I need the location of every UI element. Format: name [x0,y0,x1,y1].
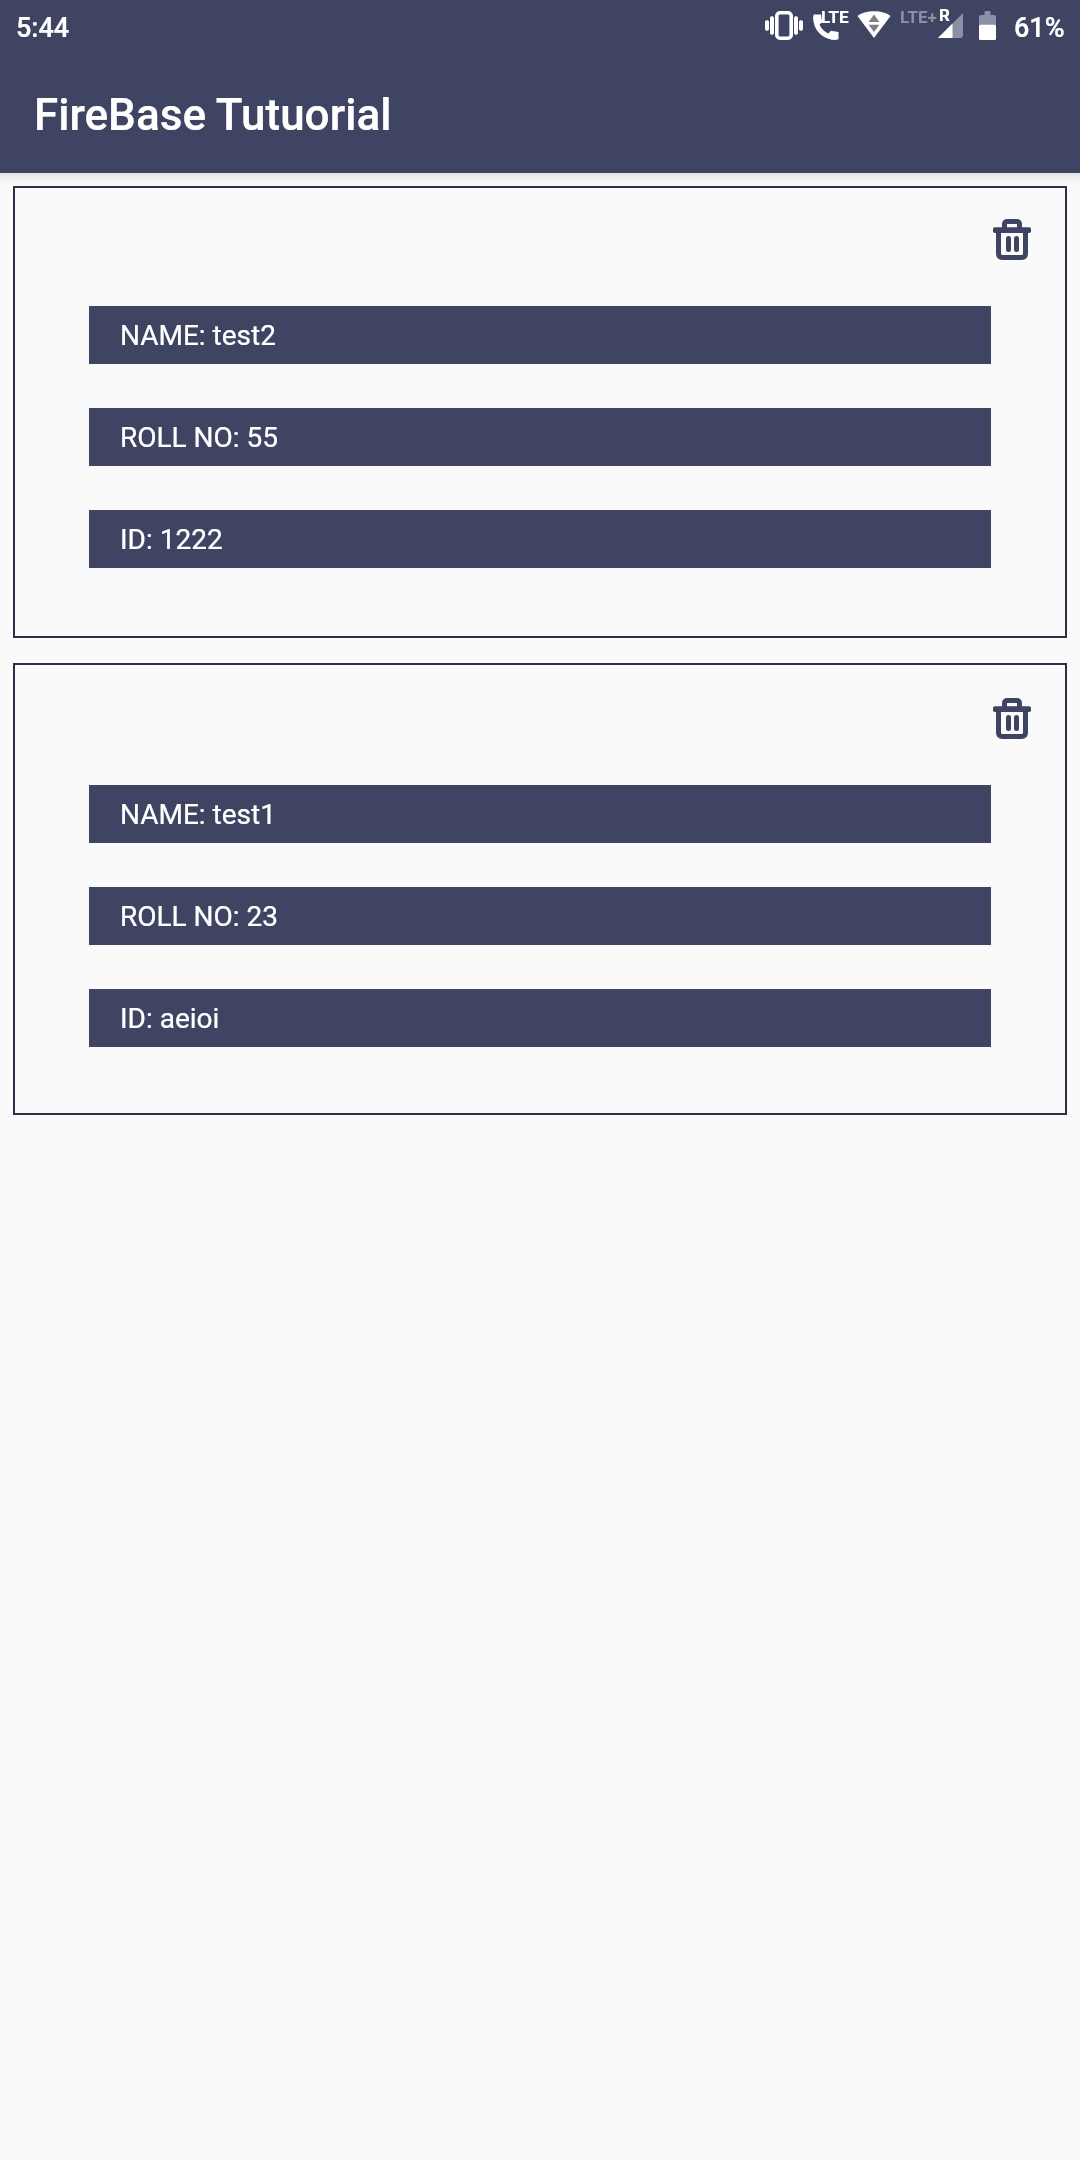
button[interactable]: Delete [984,691,1040,747]
staticText: 5:44 [16,12,70,44]
button[interactable]: Delete [984,212,1040,268]
staticText: ID: aeioi [120,1002,220,1035]
staticText: ROLL NO: 55 [120,421,279,454]
staticText: 61% [1014,12,1065,44]
staticText: ID: 1222 [120,523,223,556]
staticText: NAME: test1 [120,798,276,831]
button[interactable]: ID: aeioi [89,989,991,1047]
staticText: NAME: test2 [120,319,276,352]
staticText: LTE [821,7,849,27]
button[interactable]: ROLL NO: 55 [89,408,991,466]
staticText: FireBase Tutuorial [34,89,392,141]
button[interactable]: Delete [13,186,1067,638]
button[interactable]: ID: 1222 [89,510,991,568]
button[interactable]: Delete [13,663,1067,1115]
staticText: ROLL NO: 23 [120,900,279,933]
staticText: LTE+ [900,7,937,27]
button[interactable]: NAME: test2 [89,306,991,364]
staticText: R [939,5,950,25]
button[interactable]: NAME: test1 [89,785,991,843]
button[interactable]: ROLL NO: 23 [89,887,991,945]
